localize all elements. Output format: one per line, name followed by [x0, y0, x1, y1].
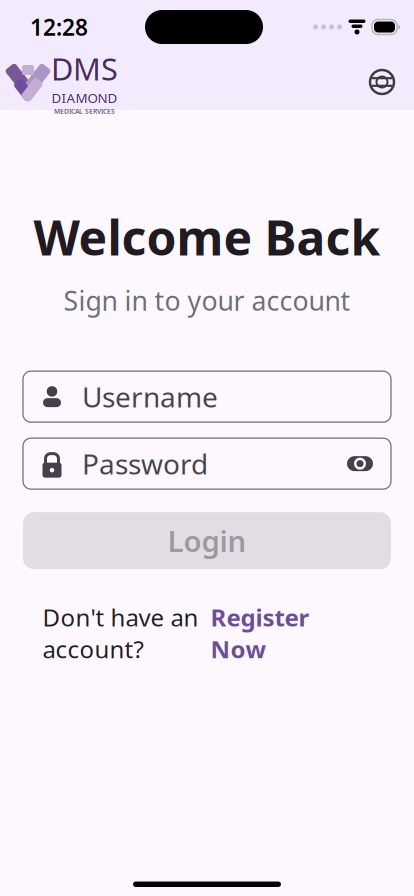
staticText: Password [82, 445, 208, 482]
button[interactable]: Login [23, 512, 391, 569]
button[interactable]: Register Now [198, 601, 309, 665]
staticText: Login [167, 521, 246, 560]
button[interactable]: Password [23, 438, 391, 489]
staticText: Don't have an account? [42, 601, 198, 665]
staticText: 12:28 [30, 12, 88, 42]
staticText: Username [82, 378, 218, 415]
staticText: DIAMOND [51, 89, 117, 107]
button[interactable]: Change language [360, 60, 404, 104]
staticText: Register Now [210, 601, 309, 665]
button[interactable]: Username [23, 371, 391, 422]
staticText: Welcome Back [33, 205, 380, 269]
staticText: MEDICAL SERVICES [54, 107, 115, 116]
staticText: Sign in to your account [63, 283, 350, 318]
staticText: DMS [51, 48, 118, 89]
